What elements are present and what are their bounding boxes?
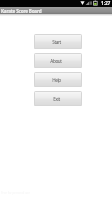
other: Status icons xyxy=(0,0,112,7)
staticText: Karate Score Board xyxy=(1,8,42,14)
staticText: Help xyxy=(52,77,61,83)
staticText: Exit xyxy=(53,96,60,102)
staticText: About xyxy=(50,58,62,64)
button[interactable]: Help xyxy=(34,72,82,87)
button[interactable]: Start xyxy=(34,34,82,49)
button[interactable]: About xyxy=(34,53,82,68)
staticText: Start xyxy=(52,39,61,45)
button[interactable]: Exit xyxy=(34,91,82,106)
staticText: 1:27 xyxy=(101,0,111,7)
